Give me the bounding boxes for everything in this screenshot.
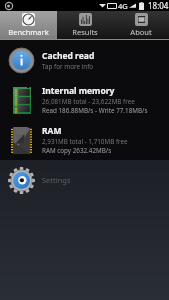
staticText: About (130, 27, 152, 37)
staticText: RAM (42, 125, 62, 137)
staticText: 18:04 (148, 0, 169, 11)
staticText: Internal memory (42, 85, 115, 97)
staticText: Cached read (42, 50, 95, 62)
button[interactable]: Internal memory (0, 80, 169, 120)
other: Settings (8, 167, 35, 194)
other: Info (9, 48, 34, 73)
staticText: 2,931MB total - 1,710MB free (42, 137, 128, 146)
staticText: Results (72, 27, 98, 37)
staticText: 4G (118, 1, 128, 11)
staticText: Read 186.88MB/s - Write 77.18MB/s (42, 106, 148, 115)
staticText: RAM copy 2632.42MB/s (42, 146, 112, 155)
staticText: Benchmark (8, 27, 49, 37)
button[interactable]: About (113, 11, 169, 39)
button[interactable]: Info (0, 40, 169, 80)
button[interactable]: Settings (0, 160, 169, 200)
button[interactable]: RAM (0, 120, 169, 160)
button[interactable]: Benchmark (0, 11, 57, 39)
staticText: Tap for more info (42, 62, 94, 71)
staticText: 26,081MB total - 23,622MB free (42, 97, 135, 106)
staticText: Settings (42, 175, 71, 185)
button[interactable]: Results (57, 11, 113, 39)
